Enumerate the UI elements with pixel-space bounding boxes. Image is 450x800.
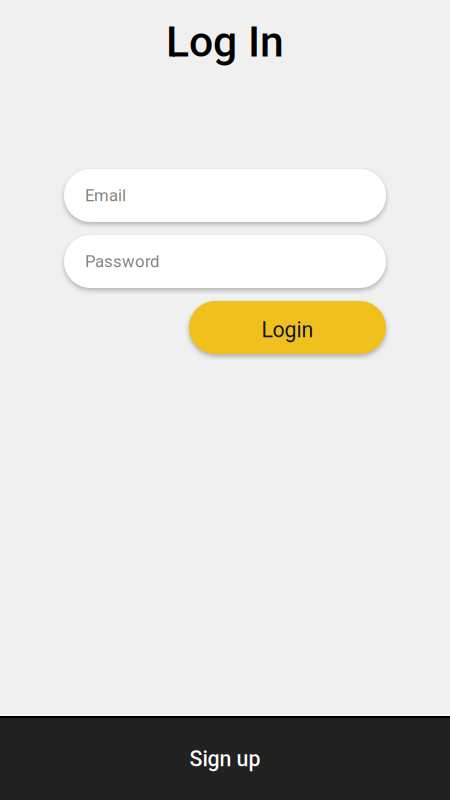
staticText: Email — [85, 186, 126, 205]
button[interactable]: Login — [189, 301, 386, 354]
button[interactable]: Sign up — [0, 718, 450, 800]
button[interactable]: Email — [64, 169, 386, 222]
staticText: Login — [261, 317, 313, 342]
staticText: Password — [85, 252, 159, 271]
staticText: Sign up — [189, 746, 260, 771]
button[interactable]: Password — [64, 235, 386, 288]
staticText: Log In — [166, 17, 284, 67]
